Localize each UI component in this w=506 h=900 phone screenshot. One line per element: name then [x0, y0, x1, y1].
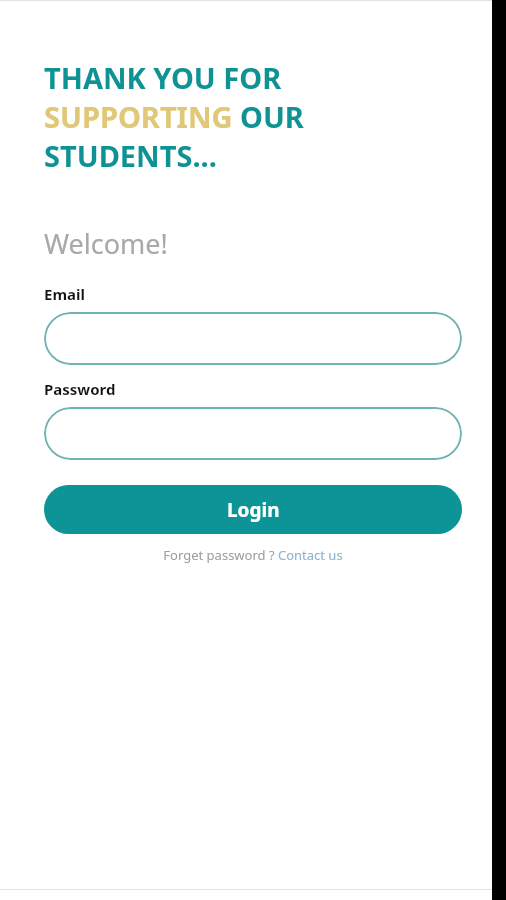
- staticText: Welcome!: [44, 225, 168, 262]
- button[interactable]: Forget password ? Contact us: [163, 546, 343, 564]
- staticText: SUPPORTING OUR: [44, 97, 304, 136]
- staticText: Password: [44, 379, 116, 399]
- button[interactable]: Login: [44, 485, 462, 534]
- button[interactable]: Email input field: [44, 312, 462, 365]
- staticText: Email: [44, 284, 85, 304]
- button[interactable]: Password input field: [44, 407, 462, 460]
- staticText: THANK YOU FOR: [44, 58, 282, 97]
- staticText: STUDENTS...: [44, 136, 217, 175]
- staticText: Login: [227, 497, 280, 523]
